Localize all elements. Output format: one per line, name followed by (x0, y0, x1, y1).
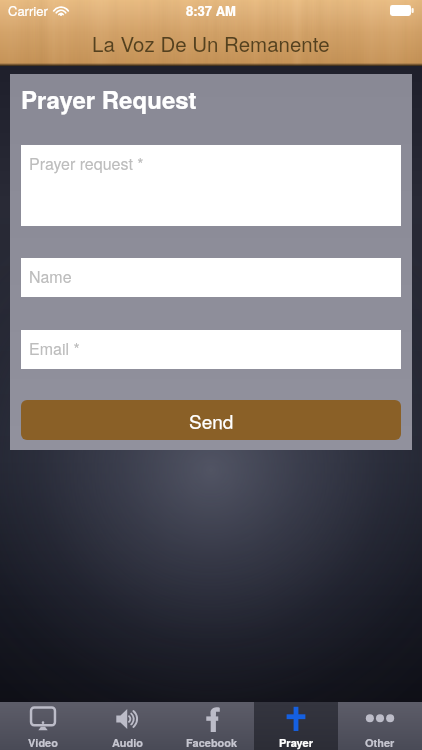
button[interactable]: Prayer request * (21, 145, 401, 226)
staticText: Prayer (279, 735, 313, 750)
button[interactable]: Name (21, 258, 401, 297)
staticText: Audio (112, 735, 144, 750)
button[interactable]: Video (0, 702, 85, 750)
button[interactable]: Send (21, 400, 401, 440)
staticText: Prayer request * (29, 152, 144, 175)
staticText: Name (29, 265, 72, 288)
other: Prayer (283, 706, 309, 732)
button[interactable]: Prayer (254, 702, 338, 750)
staticText: 8:37 AM (186, 1, 236, 20)
other: Other (367, 706, 393, 732)
staticText: La Voz De Un Remanente (92, 28, 330, 57)
staticText: Prayer Request (21, 82, 197, 116)
staticText: Send (189, 407, 234, 434)
staticText: Other (365, 735, 395, 750)
button[interactable]: Audio (85, 702, 170, 750)
button[interactable]: Facebook (170, 702, 254, 750)
button[interactable]: Email * (21, 330, 401, 369)
staticText: Video (28, 735, 58, 750)
other: Facebook (199, 706, 225, 732)
other: Video (30, 706, 56, 732)
staticText: Email * (29, 337, 80, 360)
staticText: Facebook (186, 735, 238, 750)
button[interactable]: Other (338, 702, 422, 750)
staticText: Carrier (8, 1, 48, 20)
other: Audio (115, 706, 141, 732)
